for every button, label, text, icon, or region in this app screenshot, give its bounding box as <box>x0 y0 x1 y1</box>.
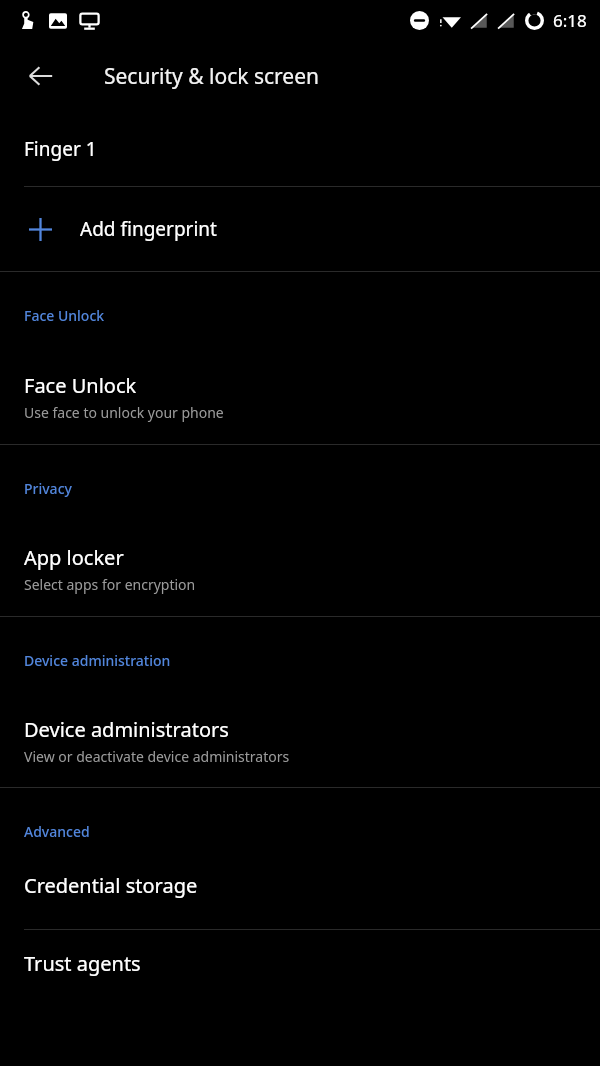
button[interactable]: Finger 1 <box>0 112 600 186</box>
staticText: 6:18 <box>553 9 587 32</box>
staticText: Device administrators <box>24 716 229 743</box>
button[interactable]: App locker <box>0 498 600 616</box>
staticText: Finger 1 <box>24 136 97 162</box>
button[interactable]: Device administrators <box>0 670 600 787</box>
staticText: Face Unlock <box>24 372 137 399</box>
staticText: View or deactivate device administrators <box>24 747 290 766</box>
staticText: Credential storage <box>24 872 198 899</box>
staticText: Face Unlock <box>24 306 105 325</box>
staticText: Trust agents <box>24 950 141 977</box>
button[interactable]: Trust agents <box>0 930 600 996</box>
staticText: Device administration <box>24 651 171 670</box>
staticText: Privacy <box>24 479 72 498</box>
staticText: App locker <box>24 544 124 571</box>
button[interactable]: Face Unlock <box>0 325 600 444</box>
staticText: Use face to unlock your phone <box>24 403 224 422</box>
staticText: Add fingerprint <box>80 216 217 242</box>
staticText: Select apps for encryption <box>24 575 196 594</box>
button[interactable]: Back <box>17 52 65 100</box>
staticText: Advanced <box>24 822 90 841</box>
staticText: Security & lock screen <box>104 62 320 91</box>
button[interactable]: Add fingerprint <box>0 187 600 271</box>
button[interactable]: Credential storage <box>0 841 600 929</box>
